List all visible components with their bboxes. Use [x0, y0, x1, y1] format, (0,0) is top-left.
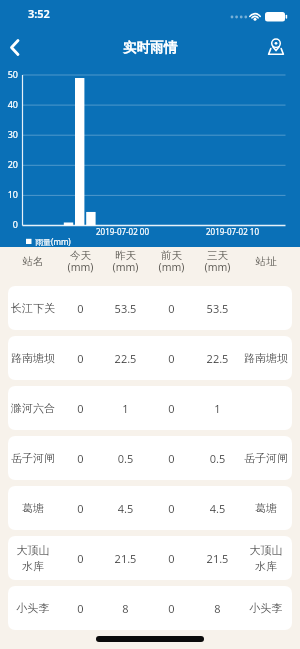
button[interactable]: 小头李: [8, 586, 292, 630]
staticText: 10: [0, 188, 18, 200]
staticText: 岳子河闸: [240, 451, 292, 465]
staticText: 22.5: [195, 351, 240, 366]
staticText: 0: [58, 601, 103, 616]
staticText: 8: [195, 601, 240, 616]
button[interactable]: [260, 32, 292, 62]
staticText: 雨量(mm): [35, 236, 71, 247]
staticText: 30: [0, 128, 18, 140]
staticText: 路南塘坝: [8, 351, 58, 365]
button[interactable]: 葛塘: [8, 486, 292, 530]
staticText: 站名: [8, 255, 58, 268]
staticText: 8: [103, 601, 148, 616]
staticText: 4.5: [195, 501, 240, 516]
staticText: 0.5: [103, 451, 148, 466]
staticText: 滁河六合: [8, 401, 58, 415]
staticText: 50: [0, 68, 18, 80]
button[interactable]: 路南塘坝: [8, 336, 292, 380]
staticText: 站址: [240, 255, 292, 268]
staticText: 0: [148, 351, 195, 366]
button[interactable]: [0, 32, 36, 62]
staticText: 大顶山 水库: [8, 543, 58, 573]
button[interactable]: 大顶山 水库: [8, 536, 292, 580]
staticText: 三天 (mm): [195, 249, 240, 274]
staticText: 0: [58, 401, 103, 416]
staticText: 53.5: [103, 301, 148, 316]
staticText: 1: [103, 401, 148, 416]
staticText: 昨天 (mm): [103, 249, 148, 274]
staticText: 0: [148, 551, 195, 566]
button[interactable]: 岳子河闸: [8, 436, 292, 480]
staticText: 0.5: [195, 451, 240, 466]
staticText: 20: [0, 158, 18, 170]
staticText: 2019-07-02 00: [96, 226, 149, 237]
staticText: 1: [195, 401, 240, 416]
staticText: 2019-07-02 10: [206, 226, 259, 237]
staticText: 0: [148, 301, 195, 316]
staticText: 21.5: [103, 551, 148, 566]
staticText: 0: [148, 401, 195, 416]
staticText: 0: [58, 451, 103, 466]
staticText: 40: [0, 98, 18, 110]
staticText: 0: [58, 301, 103, 316]
staticText: 0: [58, 351, 103, 366]
staticText: 实时雨情: [0, 39, 300, 56]
staticText: 小头李: [240, 601, 292, 615]
staticText: 0: [148, 451, 195, 466]
button[interactable]: 长江下关: [8, 286, 292, 330]
staticText: 0: [148, 601, 195, 616]
staticText: 路南塘坝: [240, 351, 292, 365]
staticText: 0: [148, 501, 195, 516]
staticText: 0: [58, 551, 103, 566]
staticText: 前天 (mm): [148, 249, 195, 274]
staticText: 0: [58, 501, 103, 516]
staticText: 0: [0, 218, 18, 230]
staticText: 今天 (mm): [58, 249, 103, 274]
staticText: 3:52: [28, 6, 50, 21]
staticText: 22.5: [103, 351, 148, 366]
button[interactable]: 滁河六合: [8, 386, 292, 430]
staticText: 长江下关: [8, 301, 58, 315]
staticText: 大顶山 水库: [240, 543, 292, 573]
staticText: 葛塘: [240, 501, 292, 515]
staticText: 葛塘: [8, 501, 58, 515]
staticText: 53.5: [195, 301, 240, 316]
staticText: 小头李: [8, 601, 58, 615]
staticText: 4.5: [103, 501, 148, 516]
staticText: 21.5: [195, 551, 240, 566]
staticText: 岳子河闸: [8, 451, 58, 465]
